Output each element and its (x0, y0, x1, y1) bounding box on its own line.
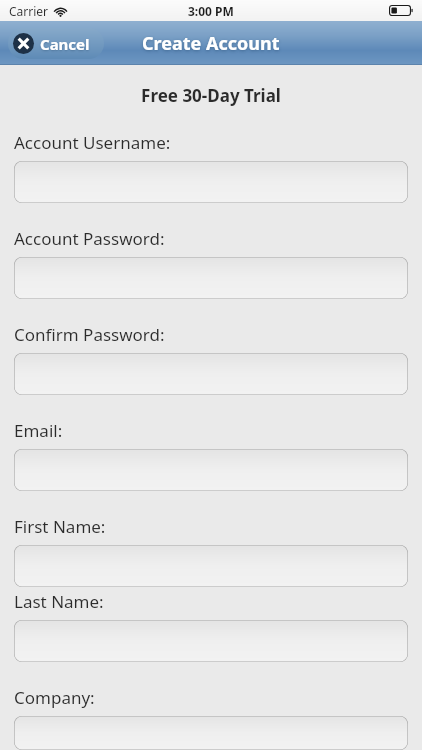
button[interactable] (14, 257, 408, 299)
staticText: 3:00 PM (188, 3, 234, 19)
staticText: Create Account (142, 31, 280, 56)
staticText: Carrier (9, 3, 49, 19)
button[interactable] (14, 716, 408, 750)
staticText: Cancel (40, 34, 90, 54)
staticText: Free 30-Day Trial (14, 84, 408, 107)
button[interactable] (14, 353, 408, 395)
button[interactable] (14, 449, 408, 491)
staticText: Account Password: (14, 227, 165, 250)
staticText: First Name: (14, 515, 106, 538)
button[interactable]: Cancel (8, 28, 104, 59)
staticText: Last Name: (14, 590, 104, 613)
staticText: Confirm Password: (14, 323, 165, 346)
staticText: Company: (14, 686, 95, 709)
staticText: Email: (14, 419, 63, 442)
button[interactable] (14, 545, 408, 587)
staticText: Account Username: (14, 131, 171, 154)
button[interactable] (14, 161, 408, 203)
button[interactable] (14, 620, 408, 662)
